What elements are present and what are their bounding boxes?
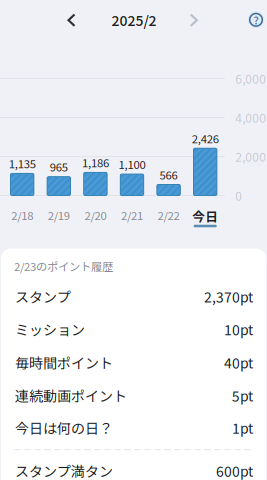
staticText: 2,370pt <box>204 286 253 307</box>
staticText: 6,000 <box>235 70 266 87</box>
button[interactable]: 今日は何の日？ <box>1 411 266 444</box>
staticText: 566 <box>160 166 178 183</box>
staticText: 今日 <box>192 207 218 225</box>
button[interactable]: ミッション <box>1 313 266 346</box>
staticText: 2/21 <box>121 207 143 223</box>
staticText: 0 <box>235 187 242 204</box>
button[interactable]: スタンプ <box>1 280 266 313</box>
staticText: 2/18 <box>11 207 33 223</box>
staticText: 連続動画ポイント <box>15 385 127 405</box>
staticText: 965 <box>50 158 68 175</box>
button[interactable]: 次の月 <box>186 10 202 30</box>
staticText: 2/19 <box>48 207 70 223</box>
staticText: 2025/2 <box>111 10 156 30</box>
staticText: ミッション <box>15 319 85 339</box>
staticText: スタンプ <box>15 286 71 307</box>
staticText: 600pt <box>216 460 253 480</box>
staticText: ? <box>253 12 258 27</box>
staticText: 5pt <box>232 385 253 405</box>
button[interactable]: 連続動画ポイント <box>1 379 266 412</box>
staticText: 4,000 <box>235 109 266 126</box>
staticText: 1,100 <box>118 156 145 172</box>
staticText: 40pt <box>224 352 253 373</box>
button[interactable]: 前の月 <box>63 10 79 30</box>
staticText: 今日は何の日？ <box>15 417 113 438</box>
staticText: 10pt <box>224 319 253 339</box>
button[interactable]: 毎時間ポイント <box>1 346 266 379</box>
button[interactable]: ヘルプ <box>244 8 267 32</box>
button[interactable]: スタンプ満タン <box>1 454 266 480</box>
staticText: 2,426 <box>192 130 219 146</box>
staticText: 2/22 <box>158 207 180 223</box>
staticText: スタンプ満タン <box>15 460 113 480</box>
staticText: 1,186 <box>82 154 109 171</box>
staticText: 2,000 <box>235 148 266 165</box>
staticText: 1pt <box>232 417 253 438</box>
staticText: 1,135 <box>9 155 36 172</box>
staticText: 2/20 <box>84 207 106 223</box>
staticText: 毎時間ポイント <box>15 352 113 373</box>
staticText: 2/23のポイント履歴 <box>14 258 113 274</box>
